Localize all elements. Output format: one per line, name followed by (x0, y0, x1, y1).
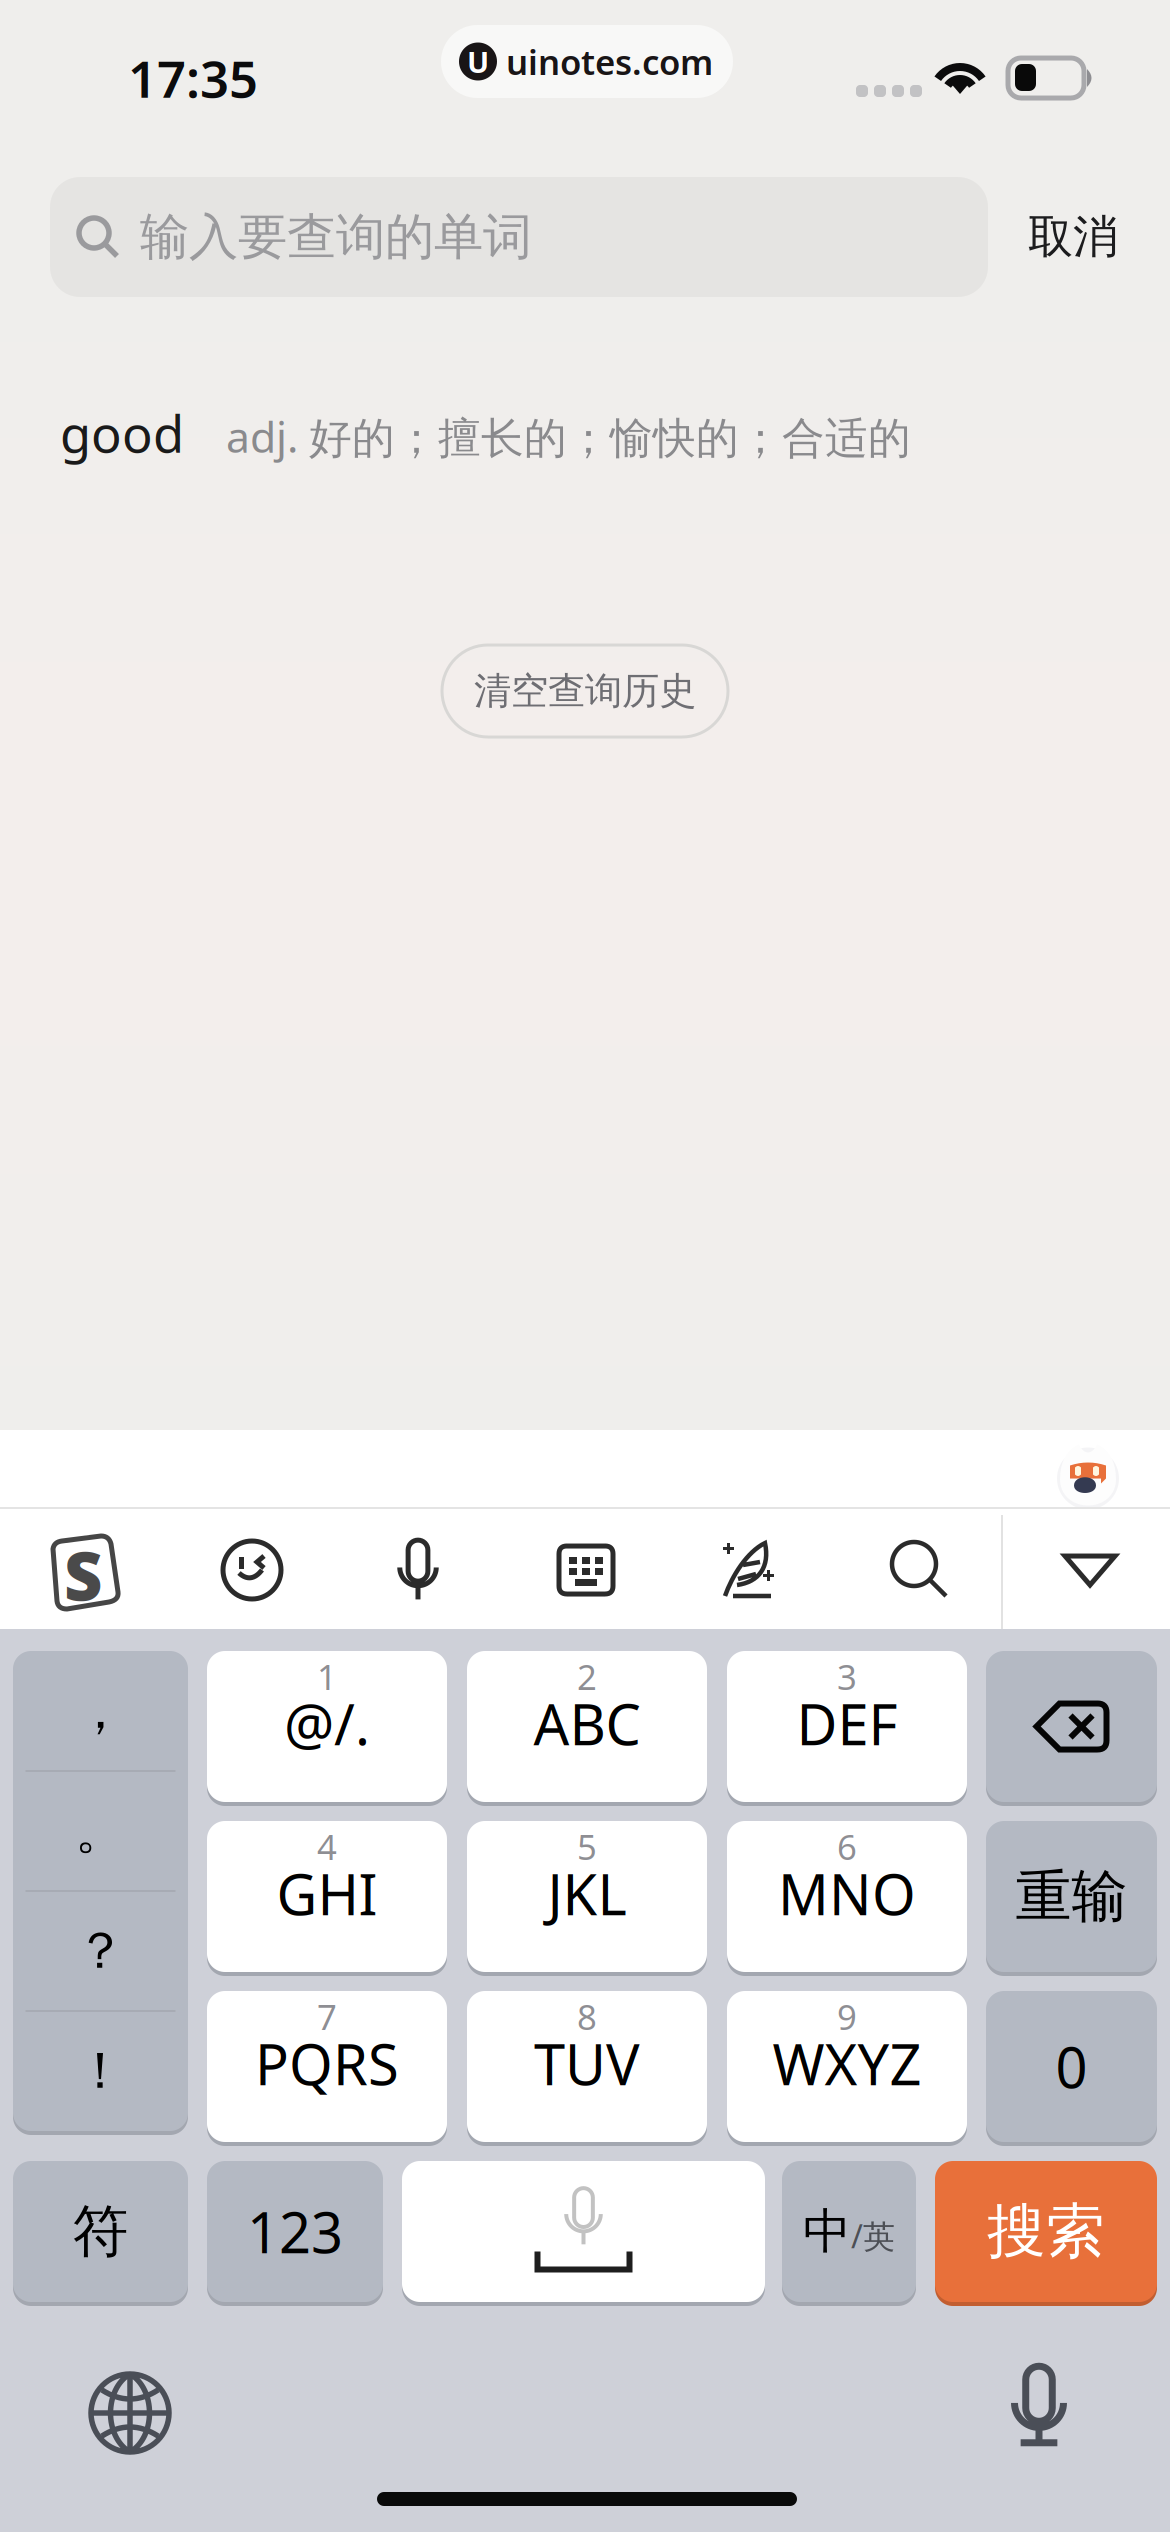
staticText: WXYZ (772, 2026, 921, 2101)
button[interactable]: 收起键盘 (1040, 1521, 1140, 1621)
staticText: 符 (72, 2197, 128, 2266)
staticText: PQRS (255, 2026, 399, 2101)
button[interactable]: 1 (207, 1651, 447, 1802)
staticText: 8 (577, 1993, 597, 2039)
button[interactable]: 清空查询历史 (442, 645, 728, 737)
staticText: ， (75, 1680, 126, 1742)
button[interactable]: 6 (727, 1821, 967, 1972)
staticText: 搜索 (987, 2195, 1105, 2268)
staticText: 4 (317, 1823, 337, 1869)
button[interactable]: 123 (207, 2161, 383, 2302)
staticText: uinotes.com (506, 38, 713, 84)
button[interactable]: 7 (207, 1991, 447, 2142)
button[interactable]: 删除 (986, 1651, 1157, 1802)
button[interactable]: 输入助手 (1048, 1438, 1128, 1515)
staticText: 5 (577, 1823, 597, 1869)
button[interactable]: 切换语言 (75, 2358, 185, 2468)
button[interactable]: 4 (207, 1821, 447, 1972)
staticText: 2 (577, 1653, 597, 1699)
staticText: ？ (75, 1920, 126, 1982)
button[interactable]: 搜索 (935, 2161, 1157, 2302)
button[interactable]: 重输 (986, 1821, 1157, 1972)
staticText: ABC (533, 1686, 640, 1761)
staticText: @/. (284, 1686, 370, 1761)
button[interactable]: 键盘 (536, 1520, 636, 1620)
staticText: 重输 (1015, 1862, 1127, 1931)
staticText: adj. 好的；擅长的；愉快的；合适的 (226, 408, 911, 465)
button[interactable]: 5 (467, 1821, 707, 1972)
staticText: 0 (1055, 2029, 1087, 2104)
staticText: 3 (837, 1653, 857, 1699)
staticText: S (64, 1531, 102, 1619)
staticText: DEF (796, 1686, 897, 1761)
staticText: /英 (851, 2214, 895, 2257)
staticText: MNO (778, 1856, 916, 1931)
staticText: 输入要查询的单词 (140, 207, 532, 267)
button[interactable]: 符 (13, 2161, 188, 2302)
button[interactable]: 表情 (202, 1520, 302, 1620)
staticText: 取消 (1028, 209, 1118, 265)
button[interactable]: ， (13, 1651, 188, 2131)
button[interactable]: 语音输入 (368, 1519, 468, 1619)
staticText: ！ (75, 2040, 126, 2102)
staticText: U (467, 42, 489, 81)
button[interactable]: 中 (782, 2161, 916, 2302)
button[interactable]: 空格 (402, 2161, 765, 2302)
staticText: GHI (276, 1856, 377, 1931)
staticText: 9 (837, 1993, 857, 2039)
button[interactable]: 0 (986, 1991, 1157, 2142)
staticText: 7 (317, 1993, 337, 2039)
staticText: JKL (547, 1856, 626, 1931)
staticText: 。 (75, 1800, 126, 1862)
staticText: 中 (803, 2202, 851, 2261)
button[interactable]: good (0, 388, 1170, 478)
button[interactable]: 8 (467, 1991, 707, 2142)
button[interactable]: 取消 (1013, 177, 1133, 297)
staticText: 6 (837, 1823, 857, 1869)
staticText: good (60, 399, 184, 467)
staticText: 123 (247, 2194, 343, 2269)
staticText: 17:35 (128, 44, 258, 112)
button[interactable]: 2 (467, 1651, 707, 1802)
staticText: TUV (534, 2026, 640, 2101)
button[interactable]: 9 (727, 1991, 967, 2142)
button[interactable]: 语音输入 (984, 2350, 1094, 2460)
staticText: 清空查询历史 (474, 668, 696, 714)
button[interactable]: 搜索 (870, 1520, 970, 1620)
button[interactable]: 3 (727, 1651, 967, 1802)
staticText: 1 (317, 1653, 337, 1699)
button[interactable]: 输入要查询的单词 (50, 177, 988, 297)
button[interactable]: 手写 (701, 1519, 801, 1619)
button[interactable]: 输入法设置 (34, 1524, 134, 1624)
